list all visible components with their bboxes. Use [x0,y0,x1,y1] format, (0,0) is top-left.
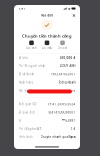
staticText: Chuyển tiền thành công [22,33,72,39]
staticText: 500,000 đ [59,56,75,60]
staticText: *** 62881 [61,119,75,122]
staticText: DUC MINH - 0912345678 [38,89,75,92]
staticText: Hóa đơn [40,14,53,17]
staticText: Nội dung [18,89,32,92]
staticText: 09:41 20/05/2024 [47,102,75,106]
staticText: 0 đ [70,127,75,131]
staticText: Lưu ảnh [26,46,37,50]
staticText: Chuyển nhanh qua Napas [40,135,75,139]
button[interactable]: Close [71,12,77,18]
staticText: Lưu mẫu [41,46,52,50]
staticText: Phí (đã gồm VAT) [18,127,41,131]
staticText: Số giao dịch [18,111,35,114]
staticText: Từ [18,119,21,122]
staticText: Thời gian GD [18,102,36,106]
staticText: 190234 662001 [50,72,75,76]
button[interactable]: Lưu ảnh [25,40,38,50]
staticText: FT24141DUC88001 [47,111,75,114]
button[interactable]: Chia sẻ [56,40,69,50]
staticText: LÊ DUY ANH [59,64,75,68]
staticText: Ngân hàng [18,81,33,84]
staticText: Phí Từ người nhận [18,64,45,68]
staticText: Số tài khoản [18,72,34,76]
button[interactable]: Lưu mẫu [40,40,53,50]
staticText: Techcombank [58,81,75,84]
staticText: Số tiền [18,56,28,60]
staticText: Hình thức [18,135,32,139]
staticText: Chia sẻ [57,46,67,50]
staticText: 9:41 [18,7,25,10]
